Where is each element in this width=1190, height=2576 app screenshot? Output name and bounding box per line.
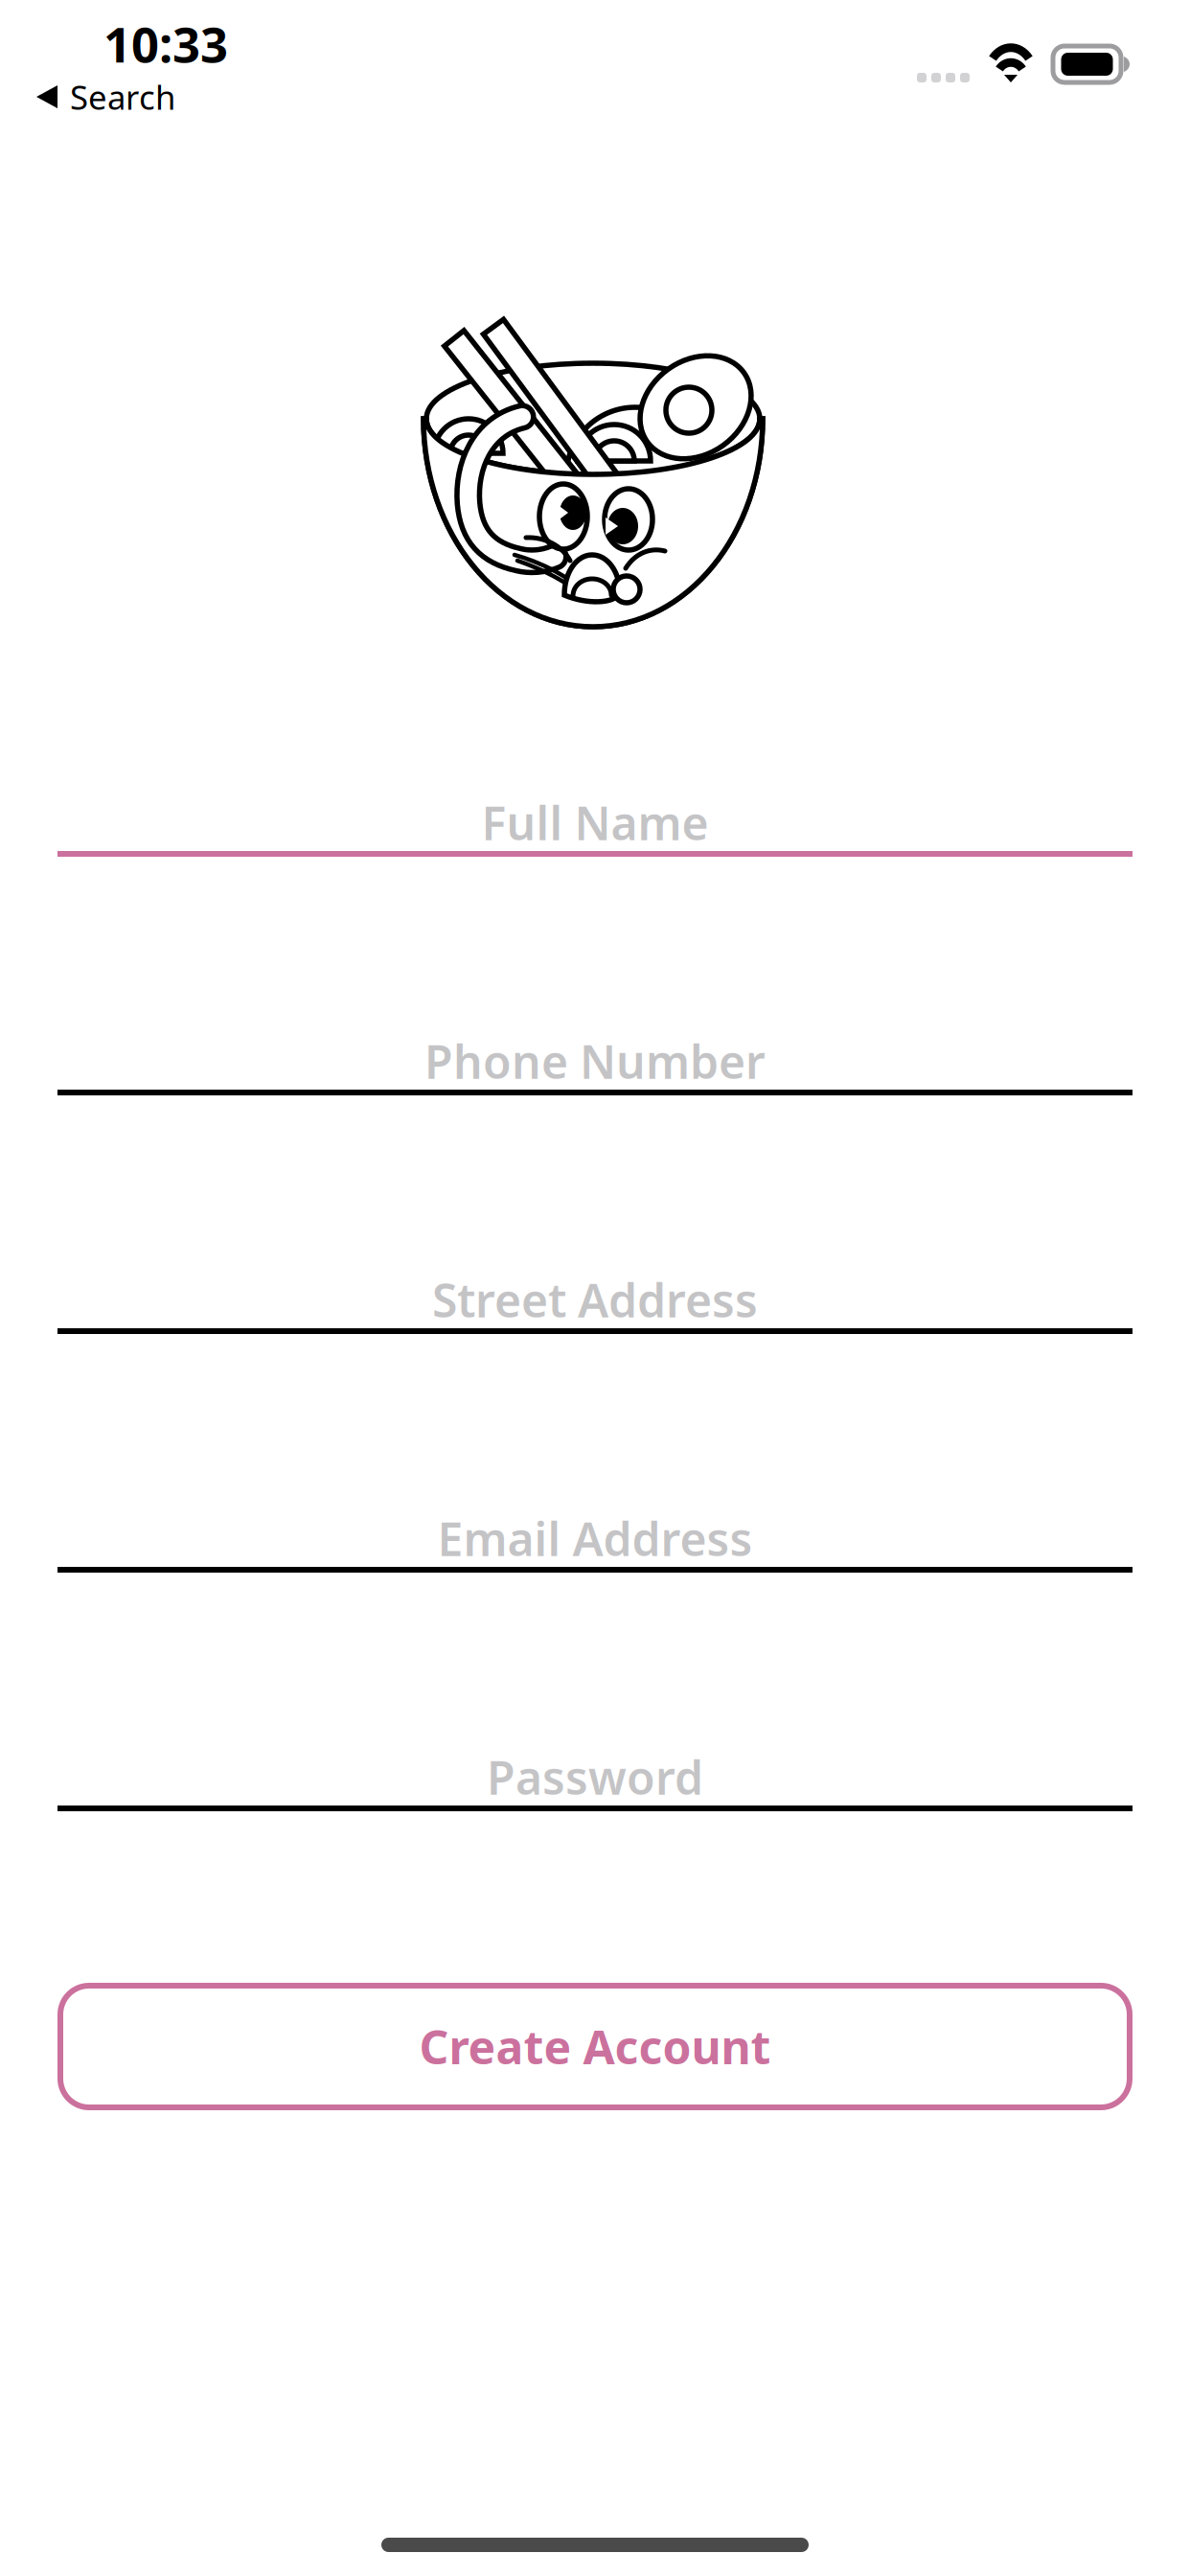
button[interactable]: Email Address [57,1334,1133,1573]
staticText: Create Account [419,2016,771,2077]
button[interactable]: Street Address [57,1095,1133,1334]
button[interactable]: Search [0,65,198,128]
button[interactable]: Create Account [57,1983,1133,2110]
staticText: 10:33 [103,11,228,76]
staticText: Search [70,75,175,119]
staticText: Password [487,1746,703,1807]
button[interactable]: Phone Number [57,857,1133,1095]
staticText: Street Address [432,1269,758,1330]
staticText: Email Address [437,1508,753,1569]
staticText: Full Name [481,792,709,853]
button[interactable]: Password [57,1573,1133,1811]
button[interactable]: Full Name [57,618,1133,857]
staticText: Phone Number [424,1030,766,1092]
